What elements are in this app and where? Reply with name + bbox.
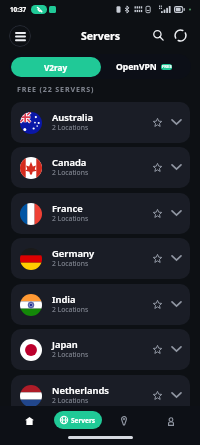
button[interactable]: Japan bbox=[11, 329, 190, 370]
button[interactable]: Expand bbox=[167, 204, 185, 222]
staticText: Servers bbox=[81, 29, 120, 43]
button[interactable]: France bbox=[11, 193, 190, 234]
button[interactable]: Favorite bbox=[148, 295, 166, 313]
button[interactable]: Expand bbox=[167, 158, 185, 176]
staticText: France bbox=[52, 202, 83, 215]
button[interactable]: Favorite bbox=[148, 386, 166, 404]
button[interactable]: India bbox=[11, 284, 190, 325]
button[interactable]: Menu bbox=[9, 25, 31, 47]
button[interactable]: Expand bbox=[167, 113, 185, 131]
button[interactable]: Favorite bbox=[148, 204, 166, 222]
button[interactable]: Servers bbox=[54, 411, 102, 429]
staticText: V2ray bbox=[44, 62, 68, 73]
button[interactable]: Favorite bbox=[148, 249, 166, 267]
button[interactable]: Australia bbox=[11, 102, 190, 143]
button[interactable]: Home bbox=[19, 411, 39, 431]
staticText: Servers bbox=[71, 416, 96, 425]
button[interactable]: Expand bbox=[167, 386, 185, 404]
button[interactable]: OpenVPN bbox=[99, 54, 189, 79]
staticText: Canada bbox=[52, 156, 87, 169]
staticText: Netherlands bbox=[52, 384, 109, 397]
button[interactable]: Favorite bbox=[148, 113, 166, 131]
staticText: 2 Locations bbox=[52, 259, 89, 268]
button[interactable]: V2ray bbox=[11, 57, 101, 77]
button[interactable]: Favorite bbox=[148, 340, 166, 358]
button[interactable]: Canada bbox=[11, 147, 190, 188]
staticText: 2 Locations bbox=[52, 123, 89, 132]
button[interactable]: Locations bbox=[114, 411, 134, 431]
button[interactable]: Search bbox=[148, 25, 168, 45]
staticText: India bbox=[52, 293, 76, 306]
staticText: 2 Locations bbox=[52, 168, 89, 177]
button[interactable]: Germany bbox=[11, 238, 190, 279]
staticText: Japan bbox=[52, 338, 78, 351]
staticText: 2 Locations bbox=[52, 214, 89, 223]
staticText: FREE bbox=[162, 64, 172, 70]
button[interactable]: Profile bbox=[161, 411, 181, 431]
button[interactable]: Refresh bbox=[170, 25, 190, 45]
staticText: Germany bbox=[52, 247, 95, 260]
button[interactable]: Favorite bbox=[148, 158, 166, 176]
staticText: 10:37 bbox=[10, 5, 27, 14]
staticText: 2 Locations bbox=[52, 305, 89, 314]
staticText: FREE (22 SERVERS) bbox=[17, 84, 95, 94]
button[interactable]: Expand bbox=[167, 340, 185, 358]
button[interactable]: Expand bbox=[167, 295, 185, 313]
staticText: Australia bbox=[52, 111, 93, 124]
staticText: 2 Locations bbox=[52, 350, 89, 359]
button[interactable]: Netherlands bbox=[11, 375, 190, 416]
button[interactable]: Expand bbox=[167, 249, 185, 267]
staticText: OpenVPN bbox=[116, 61, 157, 73]
staticText: 2 Locations bbox=[52, 396, 89, 405]
